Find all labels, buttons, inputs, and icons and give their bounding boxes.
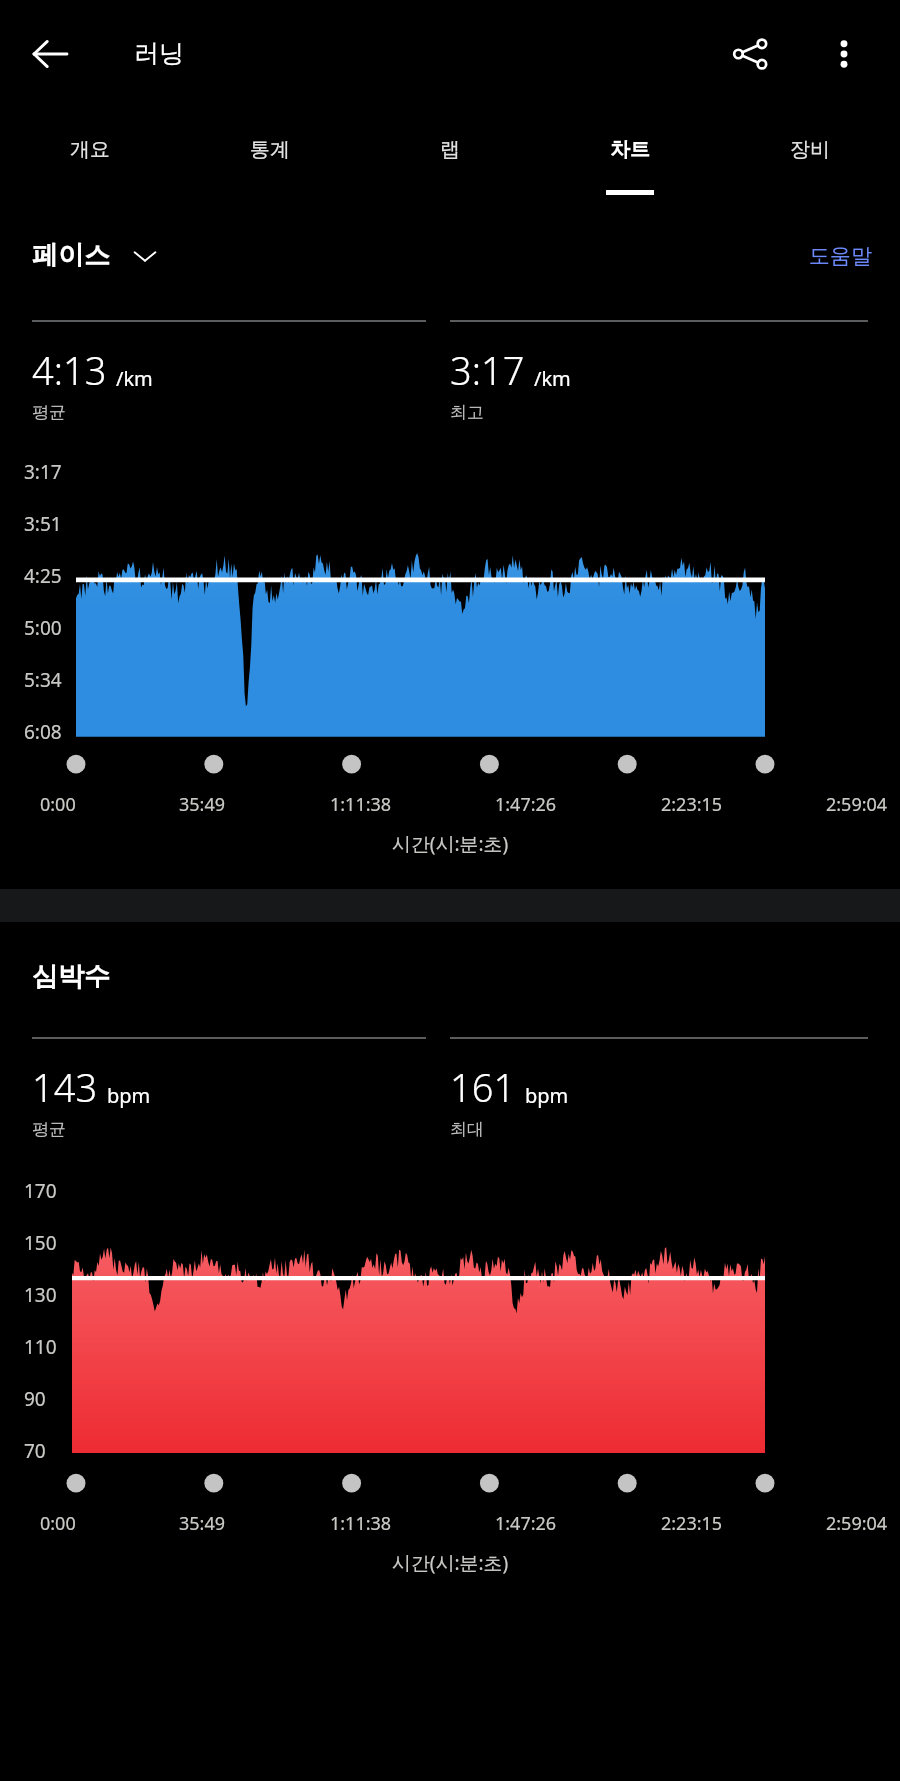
staticText: 130 [24,1282,57,1308]
staticText: 110 [24,1334,57,1360]
staticText: 차트 [610,137,650,162]
staticText: 6:08 [24,719,62,745]
staticText: 최대 [450,1119,484,1140]
staticText: 0:00 [40,1511,76,1536]
staticText: 1:47:26 [495,792,557,817]
staticText: 3:17 [450,344,525,396]
staticText: 심박수 [32,960,110,993]
button[interactable]: More options [806,16,882,92]
staticText: 1:11:38 [330,1511,392,1536]
staticText: 35:49 [179,792,226,817]
staticText: /km [534,365,571,392]
staticText: 페이스 [32,239,110,272]
staticText: 2:23:15 [661,1511,723,1536]
staticText: 시간(시:분:초) [0,831,900,857]
staticText: 5:00 [24,615,62,641]
button[interactable]: 개요 [0,107,180,217]
staticText: 랩 [440,137,460,162]
staticText: bpm [107,1082,151,1109]
button[interactable]: 도움말 [809,243,872,269]
staticText: /km [116,365,153,392]
staticText: 평균 [32,1119,66,1140]
staticText: 70 [24,1438,46,1464]
staticText: 최고 [450,402,484,423]
button[interactable]: Share [712,16,788,92]
staticText: 시간(시:분:초) [0,1550,900,1576]
staticText: 2:59:04 [826,792,888,817]
staticText: 1:47:26 [495,1511,557,1536]
staticText: 0:00 [40,792,76,817]
staticText: 장비 [790,137,830,162]
button[interactable]: 랩 [360,107,540,217]
staticText: bpm [525,1082,569,1109]
button[interactable]: 장비 [720,107,900,217]
staticText: 2:23:15 [661,792,723,817]
staticText: 4:13 [32,344,107,396]
staticText: 러닝 [134,38,184,69]
staticText: 3:51 [24,511,62,537]
staticText: 150 [24,1230,57,1256]
staticText: 5:34 [24,667,62,693]
button[interactable]: Back [14,18,86,90]
staticText: 2:59:04 [826,1511,888,1536]
staticText: 3:17 [24,459,62,485]
staticText: 161 [450,1061,516,1113]
staticText: 170 [24,1178,57,1204]
staticText: 도움말 [809,243,872,269]
staticText: 143 [32,1061,98,1113]
button[interactable]: 차트 [540,107,720,217]
button[interactable]: 통계 [180,107,360,217]
staticText: 4:25 [24,563,62,589]
staticText: 개요 [70,137,110,162]
staticText: 90 [24,1386,46,1412]
button[interactable]: 페이스 [32,239,158,272]
staticText: 평균 [32,402,66,423]
staticText: 1:11:38 [330,792,392,817]
staticText: 35:49 [179,1511,226,1536]
staticText: 통계 [250,137,290,162]
